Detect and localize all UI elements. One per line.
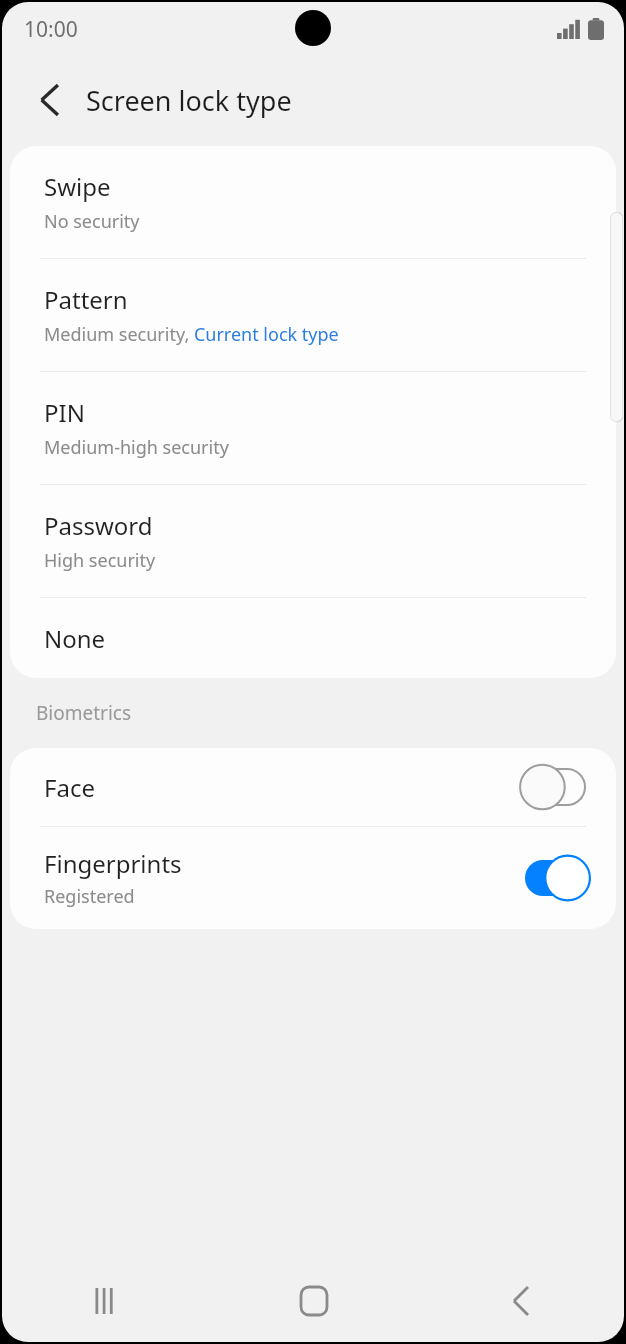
staticText: Fingerprints (44, 847, 182, 880)
staticText: 10:00 (24, 15, 78, 44)
button[interactable]: Back (18, 68, 82, 132)
button[interactable]: Face (10, 748, 616, 826)
button[interactable]: Swipe (10, 146, 616, 258)
button[interactable]: PIN (10, 372, 616, 484)
button[interactable]: Home (210, 1260, 417, 1342)
staticText: None (44, 622, 106, 655)
staticText: Medium security, Current lock type (44, 322, 339, 347)
button[interactable]: None (10, 598, 616, 678)
button[interactable]: Password (10, 485, 616, 597)
button[interactable]: Pattern (10, 259, 616, 371)
staticText: Biometrics (36, 700, 132, 726)
staticText: Swipe (44, 170, 111, 203)
staticText: No security (44, 209, 140, 234)
button[interactable]: Fingerprints toggle (518, 855, 592, 901)
staticText: Medium-high security (44, 435, 229, 460)
button[interactable]: Fingerprints (10, 827, 616, 929)
staticText: Registered (44, 884, 135, 909)
staticText: Screen lock type (86, 82, 292, 119)
staticText: Face (44, 771, 95, 804)
staticText: High security (44, 548, 156, 573)
button[interactable]: Recent apps (2, 1260, 210, 1342)
button[interactable]: Back (417, 1260, 624, 1342)
staticText: Pattern (44, 283, 128, 316)
button[interactable]: Face toggle (518, 764, 592, 810)
staticText: PIN (44, 396, 85, 429)
staticText: Password (44, 509, 153, 542)
